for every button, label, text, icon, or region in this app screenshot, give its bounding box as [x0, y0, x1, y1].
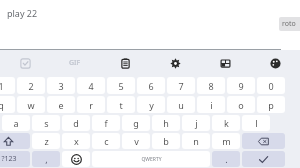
button[interactable]: t: [107, 96, 135, 113]
button[interactable]: j: [182, 115, 210, 131]
staticText: m: [222, 135, 231, 147]
button[interactable]: 9: [227, 77, 255, 94]
button[interactable]: l: [242, 115, 270, 131]
staticText: r: [89, 99, 93, 111]
staticText: QWERTY: [141, 156, 162, 163]
button[interactable]: m: [212, 133, 240, 149]
staticText: h: [163, 117, 169, 129]
button[interactable]: ,: [32, 151, 60, 167]
staticText: l: [255, 117, 258, 129]
button[interactable]: Resize keyboard: [200, 50, 250, 76]
button[interactable]: Enter: [242, 151, 285, 167]
button[interactable]: y: [137, 96, 165, 113]
button[interactable]: w: [17, 96, 45, 113]
button[interactable]: Shift: [0, 133, 30, 149]
button[interactable]: g: [122, 115, 150, 131]
button[interactable]: x: [62, 133, 90, 149]
button[interactable]: Theme: [250, 50, 300, 76]
staticText: play 22: [7, 7, 38, 19]
button[interactable]: s: [32, 115, 60, 131]
staticText: 4: [88, 80, 94, 92]
button[interactable]: 2: [17, 77, 45, 94]
button[interactable]: 3: [47, 77, 75, 94]
staticText: a: [13, 117, 19, 129]
staticText: ?123: [1, 154, 17, 164]
button[interactable]: Space: [92, 151, 210, 167]
staticText: 7: [178, 80, 184, 92]
button[interactable]: v: [122, 133, 150, 149]
button[interactable]: Emoji: [62, 151, 90, 167]
button[interactable]: h: [152, 115, 180, 131]
button[interactable]: 8: [197, 77, 225, 94]
staticText: c: [104, 135, 109, 147]
staticText: j: [195, 117, 198, 129]
staticText: GIF: [69, 58, 81, 68]
staticText: k: [224, 117, 229, 129]
staticText: u: [178, 99, 184, 111]
staticText: roto: [282, 19, 296, 29]
staticText: g: [133, 117, 139, 129]
button[interactable]: f: [92, 115, 120, 131]
staticText: z: [44, 135, 49, 147]
staticText: 2: [28, 80, 34, 92]
button[interactable]: i: [197, 96, 225, 113]
staticText: d: [73, 117, 79, 129]
staticText: e: [58, 99, 64, 111]
staticText: 0: [268, 80, 274, 92]
staticText: p: [268, 99, 274, 111]
staticText: 9: [238, 80, 244, 92]
button[interactable]: 7: [167, 77, 195, 94]
staticText: 6: [148, 80, 154, 92]
button[interactable]: Clipboard: [100, 50, 150, 76]
button[interactable]: e: [47, 96, 75, 113]
button[interactable]: n: [182, 133, 210, 149]
button[interactable]: c: [92, 133, 120, 149]
button[interactable]: Stickers: [0, 50, 50, 76]
button[interactable]: k: [212, 115, 240, 131]
button[interactable]: GIF: [50, 50, 100, 76]
staticText: v: [134, 135, 139, 147]
button[interactable]: .: [212, 151, 240, 167]
button[interactable]: b: [152, 133, 180, 149]
staticText: i: [210, 99, 213, 111]
staticText: .: [225, 153, 228, 165]
staticText: 5: [118, 80, 124, 92]
button[interactable]: Settings: [150, 50, 200, 76]
button[interactable]: z: [32, 133, 60, 149]
button[interactable]: 0: [257, 77, 285, 94]
staticText: ,: [45, 153, 48, 165]
staticText: 3: [58, 80, 64, 92]
button[interactable]: u: [167, 96, 195, 113]
staticText: q: [0, 99, 4, 111]
button[interactable]: 6: [137, 77, 165, 94]
button[interactable]: Backspace: [242, 133, 285, 149]
staticText: o: [238, 99, 244, 111]
staticText: b: [163, 135, 169, 147]
staticText: 1: [0, 80, 4, 92]
button[interactable]: p: [257, 96, 285, 113]
staticText: y: [149, 99, 154, 111]
button[interactable]: a: [2, 115, 30, 131]
button[interactable]: 4: [77, 77, 105, 94]
button[interactable]: r: [77, 96, 105, 113]
staticText: 8: [208, 80, 214, 92]
staticText: n: [193, 135, 199, 147]
button[interactable]: roto: [279, 17, 300, 31]
button[interactable]: q: [0, 96, 15, 113]
staticText: f: [104, 117, 108, 129]
button[interactable]: o: [227, 96, 255, 113]
button[interactable]: ?123: [0, 151, 30, 167]
staticText: s: [44, 117, 49, 129]
staticText: x: [74, 135, 79, 147]
button[interactable]: d: [62, 115, 90, 131]
button[interactable]: 1: [0, 77, 15, 94]
button[interactable]: 5: [107, 77, 135, 94]
staticText: t: [119, 99, 123, 111]
staticText: w: [27, 99, 35, 111]
